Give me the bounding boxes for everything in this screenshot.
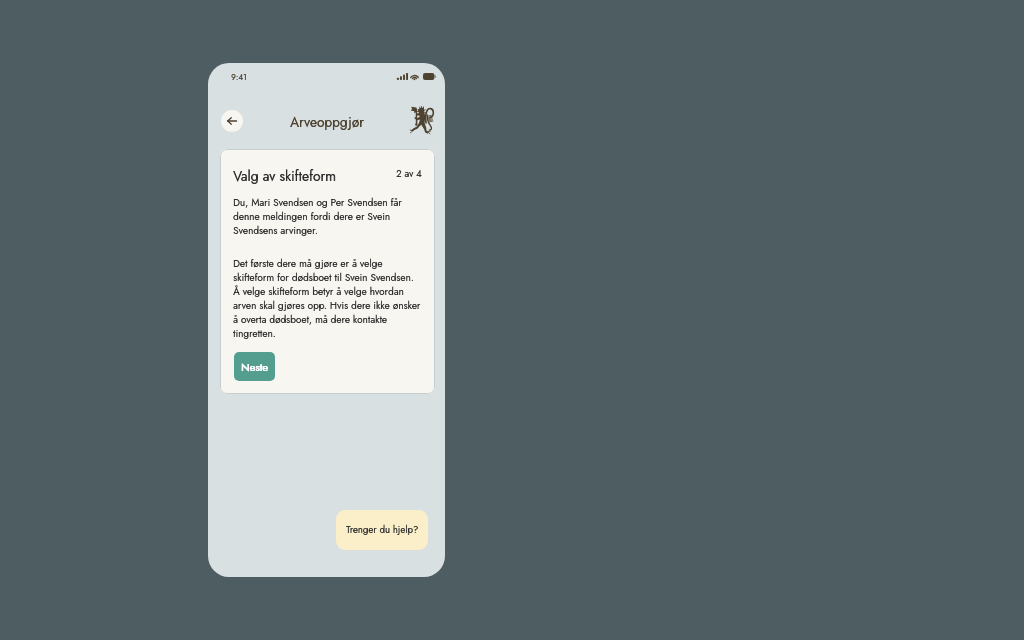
staticText: 9:41 (231, 71, 247, 83)
button[interactable]: Neste (234, 352, 275, 381)
staticText: 2 av 4 (396, 167, 422, 181)
staticText: Valg av skifteform (233, 166, 336, 186)
staticText: Det første dere må gjøre er å velge skif… (233, 256, 423, 340)
staticText: Trenger du hjelp? (346, 523, 419, 537)
staticText: Arveoppgjør (290, 112, 364, 132)
staticText: Du, Mari Svendsen og Per Svendsen får de… (233, 195, 423, 237)
button[interactable]: Trenger du hjelp? (336, 510, 428, 550)
button[interactable]: Back (221, 110, 243, 132)
staticText: Neste (241, 359, 268, 375)
